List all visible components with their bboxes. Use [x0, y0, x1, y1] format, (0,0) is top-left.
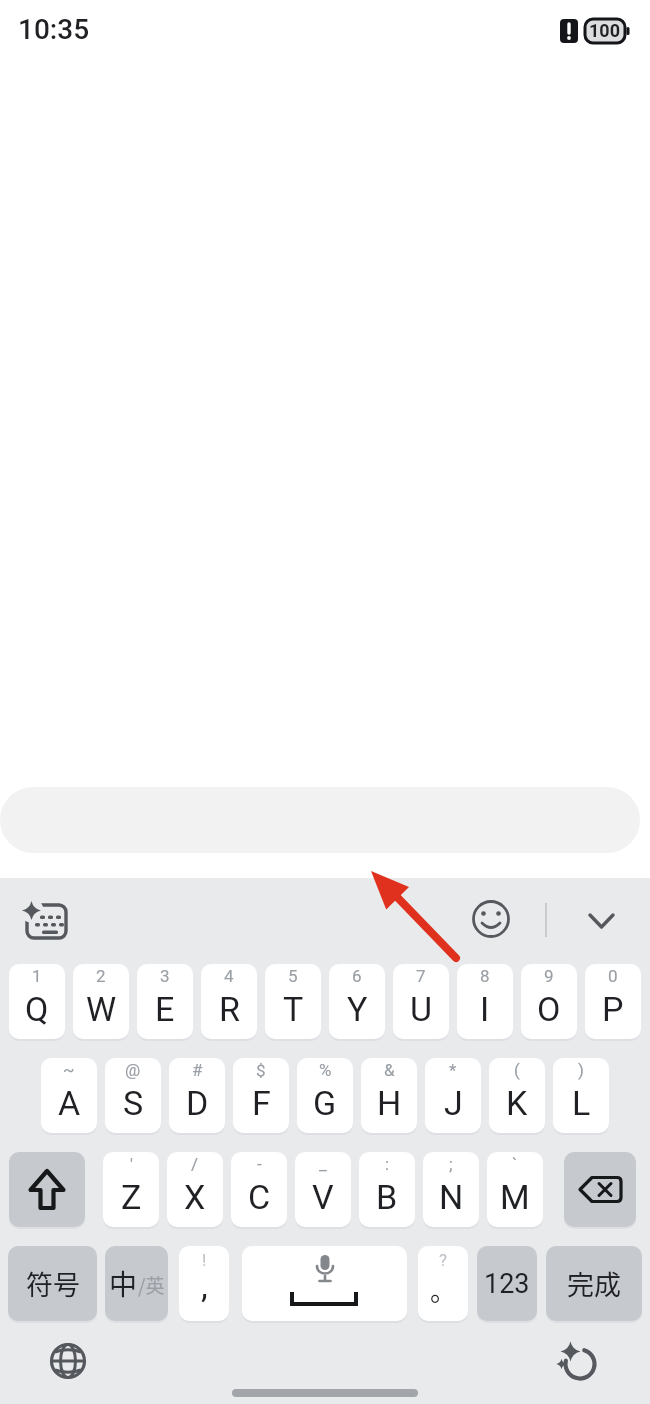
staticText: 符号	[26, 1264, 80, 1303]
staticText: Y	[347, 989, 368, 1029]
staticText: ,	[201, 1266, 208, 1306]
button[interactable]: '	[103, 1152, 159, 1227]
button[interactable]: 9	[521, 964, 577, 1039]
button[interactable]: $	[233, 1058, 289, 1133]
button[interactable]: 完成	[546, 1246, 642, 1321]
button[interactable]: @	[105, 1058, 161, 1133]
button[interactable]: 符号	[8, 1246, 97, 1321]
button[interactable]: 7	[393, 964, 449, 1039]
staticText: V	[312, 1177, 334, 1217]
button[interactable]: 3	[137, 964, 193, 1039]
button[interactable]: -	[231, 1152, 287, 1227]
button[interactable]: ~	[41, 1058, 97, 1133]
staticText: Z	[121, 1177, 142, 1217]
staticText: S	[123, 1083, 144, 1123]
button[interactable]: %	[297, 1058, 353, 1133]
staticText: 。	[430, 1271, 457, 1309]
staticText: X	[184, 1177, 206, 1217]
staticText: ~	[63, 1060, 75, 1080]
staticText: K	[506, 1083, 528, 1123]
staticText: N	[439, 1177, 464, 1217]
button[interactable]: 4	[201, 964, 257, 1039]
button[interactable]	[45, 1338, 91, 1384]
staticText: C	[248, 1177, 271, 1217]
staticText: A	[58, 1083, 81, 1123]
staticText: J	[444, 1083, 463, 1123]
staticText: @	[125, 1060, 141, 1080]
staticText: #	[192, 1060, 203, 1080]
staticText: %	[319, 1060, 332, 1080]
button[interactable]: !	[179, 1246, 229, 1321]
staticText: 2	[96, 966, 106, 986]
button[interactable]	[556, 1340, 602, 1386]
staticText: ;	[449, 1154, 453, 1174]
staticText: -	[257, 1154, 262, 1174]
button[interactable]: ;	[423, 1152, 479, 1227]
button[interactable]: _	[295, 1152, 351, 1227]
staticText: 1	[32, 966, 42, 986]
button[interactable]	[465, 895, 517, 943]
staticText: 7	[416, 966, 426, 986]
button[interactable]: 2	[73, 964, 129, 1039]
button[interactable]: 123	[477, 1246, 537, 1321]
staticText: Q	[25, 989, 49, 1029]
button[interactable]: (	[489, 1058, 545, 1133]
staticText: H	[377, 1083, 402, 1123]
button[interactable]: 0	[585, 964, 641, 1039]
staticText: 10:35	[18, 13, 90, 46]
staticText: E	[155, 989, 175, 1029]
button[interactable]	[9, 1152, 85, 1227]
button[interactable]: 6	[329, 964, 385, 1039]
staticText: '	[130, 1154, 133, 1174]
staticText: 3	[160, 966, 170, 986]
staticText: $	[256, 1060, 266, 1080]
button[interactable]	[242, 1246, 407, 1321]
staticText: /英	[138, 1271, 165, 1299]
staticText: (	[514, 1060, 520, 1080]
staticText: 5	[288, 966, 298, 986]
staticText: 中	[109, 1263, 138, 1304]
staticText: T	[283, 989, 304, 1029]
staticText: M	[500, 1177, 530, 1217]
staticText: `	[512, 1154, 518, 1174]
staticText: _	[319, 1154, 327, 1174]
staticText: 8	[480, 966, 490, 986]
button[interactable]: 8	[457, 964, 513, 1039]
staticText: I	[480, 989, 490, 1029]
button[interactable]: 5	[265, 964, 321, 1039]
staticText: 100	[589, 20, 620, 41]
staticText: L	[572, 1083, 591, 1123]
staticText: G	[313, 1083, 337, 1123]
button[interactable]	[580, 898, 624, 942]
staticText: 4	[224, 966, 234, 986]
staticText: *	[449, 1060, 457, 1080]
staticText: P	[602, 989, 624, 1029]
staticText: ?	[439, 1250, 448, 1270]
staticText: B	[376, 1177, 398, 1217]
staticText: 9	[544, 966, 554, 986]
staticText: &	[384, 1060, 395, 1080]
button[interactable]: /	[167, 1152, 223, 1227]
staticText: 123	[484, 1268, 530, 1300]
button[interactable]: 中	[105, 1246, 168, 1321]
button[interactable]: #	[169, 1058, 225, 1133]
button[interactable]: &	[361, 1058, 417, 1133]
staticText: U	[410, 989, 433, 1029]
staticText: /	[191, 1154, 199, 1174]
button[interactable]	[564, 1152, 636, 1227]
staticText: 完成	[567, 1264, 621, 1303]
button[interactable]: ?	[418, 1246, 468, 1321]
staticText: R	[219, 989, 240, 1029]
button[interactable]: 1	[9, 964, 65, 1039]
staticText: )	[578, 1060, 584, 1080]
button[interactable]: )	[553, 1058, 609, 1133]
staticText: O	[537, 989, 561, 1029]
staticText: !	[202, 1250, 207, 1270]
button[interactable]: :	[359, 1152, 415, 1227]
button[interactable]	[16, 895, 74, 947]
button[interactable]: *	[425, 1058, 481, 1133]
staticText: 0	[608, 966, 618, 986]
staticText: :	[385, 1154, 390, 1174]
button[interactable]: `	[487, 1152, 543, 1227]
